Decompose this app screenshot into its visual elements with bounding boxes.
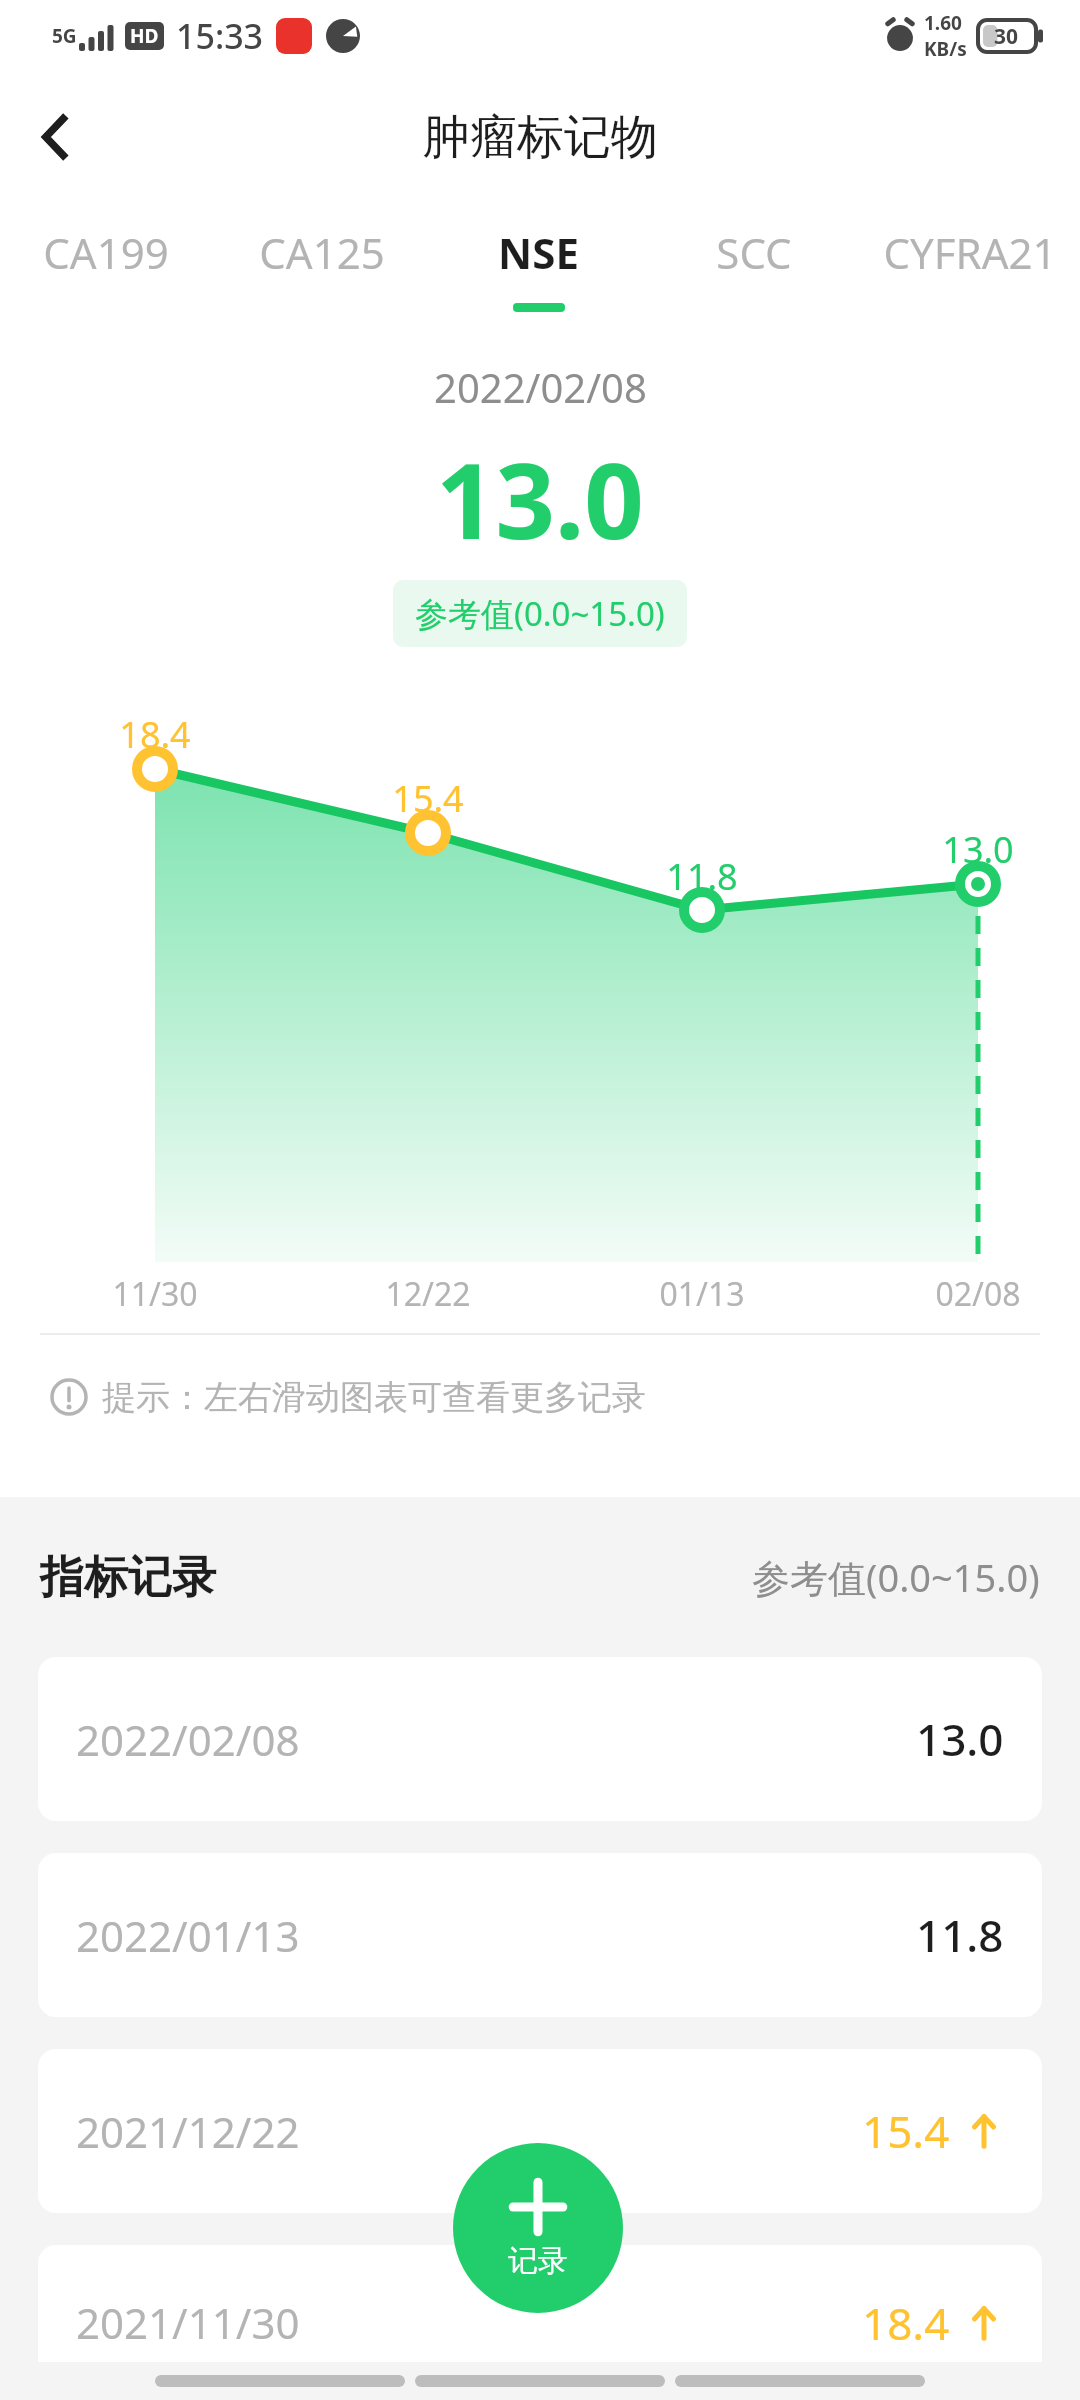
button[interactable]: CYFRA21 — [862, 202, 1078, 342]
staticText: HD — [130, 23, 159, 49]
button[interactable]: 2022/02/08 — [38, 1657, 1042, 1821]
staticText: CA125 — [259, 224, 385, 281]
staticText: 15.4 — [862, 2101, 950, 2161]
button[interactable]: NSE — [430, 202, 646, 342]
button[interactable]: 2021/12/22 — [38, 2049, 1042, 2213]
staticText: 15:33 — [176, 13, 264, 59]
button[interactable]: 2022/01/13 — [38, 1853, 1042, 2017]
button[interactable]: SCC — [646, 202, 862, 342]
button[interactable]: 记录 — [453, 2143, 623, 2313]
button[interactable]: CA125 — [214, 202, 430, 342]
staticText: CA199 — [43, 224, 169, 281]
staticText: SCC — [716, 224, 792, 281]
staticText: 12/22 — [368, 1272, 488, 1316]
staticText: 1.60 — [924, 10, 962, 36]
staticText: 2021/12/22 — [76, 2103, 300, 2160]
button[interactable]: Back — [0, 82, 110, 192]
staticText: CYFRA21 — [883, 224, 1057, 281]
staticText: NSE — [498, 224, 579, 281]
button[interactable]: Navigation — [415, 2375, 665, 2387]
staticText: 30 — [994, 22, 1019, 51]
staticText: 13.0 — [928, 825, 1028, 874]
staticText: 11/30 — [95, 1272, 215, 1316]
staticText: 02/08 — [918, 1272, 1038, 1316]
staticText: 18.4 — [105, 710, 205, 759]
staticText: 11.8 — [652, 852, 752, 901]
staticText: 提示：左右滑动图表可查看更多记录 — [102, 1376, 646, 1419]
staticText: 13.0 — [916, 1709, 1004, 1769]
staticText: 2022/01/13 — [76, 1907, 300, 1964]
button[interactable]: CA199 — [0, 202, 214, 342]
staticText: 肿瘤标记物 — [423, 108, 658, 167]
staticText: 2022/02/08 — [76, 1711, 300, 1768]
staticText: 记录 — [508, 2242, 568, 2280]
staticText: 2021/11/30 — [76, 2294, 300, 2351]
staticText: 参考值(0.0~15.0) — [415, 591, 665, 636]
staticText: 参考值(0.0~15.0) — [752, 1551, 1040, 1603]
staticText: 13.0 — [436, 428, 644, 570]
staticText: KB/s — [924, 36, 967, 62]
button[interactable]: Navigation — [155, 2375, 405, 2387]
staticText: 11.8 — [916, 1905, 1004, 1965]
staticText: 2022/02/08 — [434, 360, 647, 414]
staticText: 01/13 — [642, 1272, 762, 1316]
button[interactable]: 2021/11/30 — [38, 2245, 1042, 2400]
staticText: 18.4 — [862, 2293, 950, 2353]
staticText: 5G — [52, 23, 77, 49]
button[interactable]: Navigation — [675, 2375, 925, 2387]
staticText: 指标记录 — [40, 1550, 216, 1605]
staticText: 15.4 — [378, 774, 478, 823]
